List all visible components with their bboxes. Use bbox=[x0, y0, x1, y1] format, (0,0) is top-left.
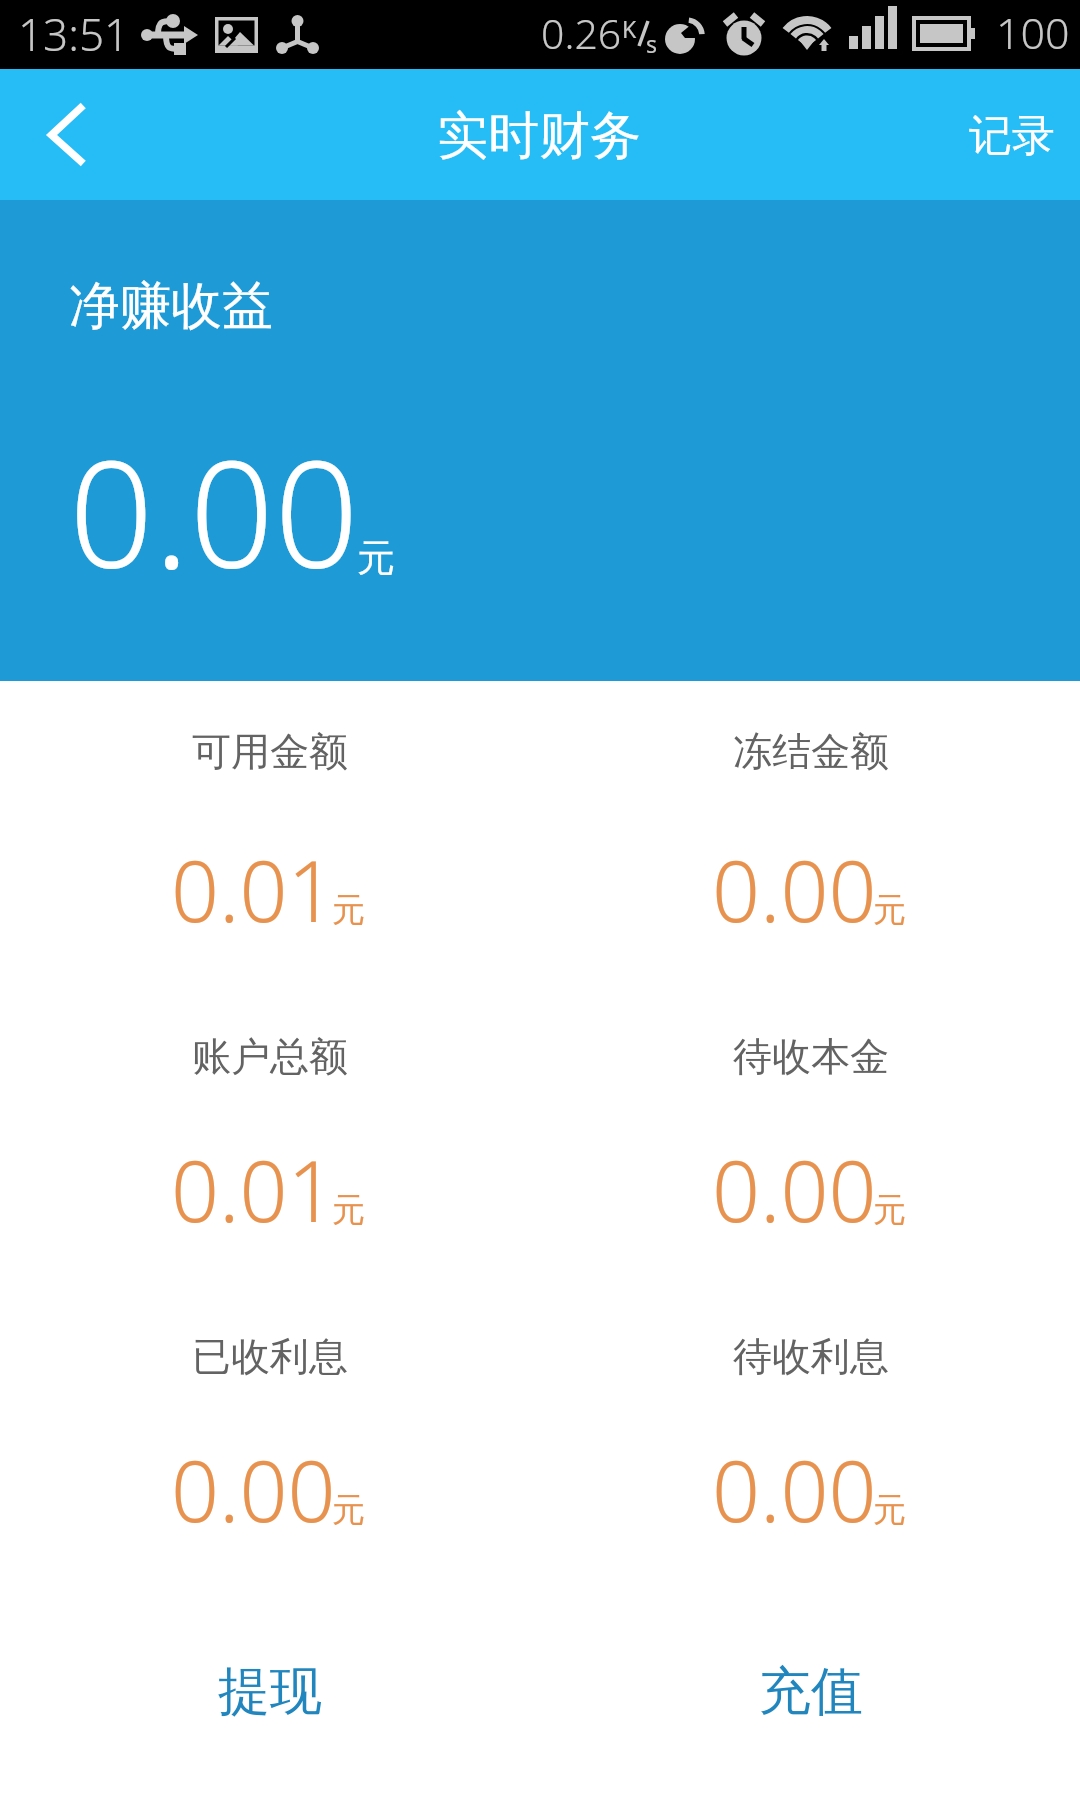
staticText: 记录 bbox=[969, 109, 1055, 160]
staticText: 冻结金额 bbox=[621, 727, 1001, 776]
staticText: 0.26 bbox=[541, 5, 622, 61]
staticText: 元 bbox=[332, 1489, 365, 1531]
staticText: 元 bbox=[332, 1189, 365, 1231]
staticText: 待收本金 bbox=[621, 1032, 1001, 1081]
staticText: 0.00 bbox=[69, 410, 359, 612]
staticText: 元 bbox=[873, 1189, 906, 1231]
button[interactable]: 记录 bbox=[929, 69, 1080, 200]
staticText: 待收利息 bbox=[621, 1332, 1001, 1381]
button[interactable]: 充值 bbox=[701, 1635, 921, 1755]
staticText: 0.00 bbox=[171, 1432, 336, 1546]
staticText: 13:51 bbox=[18, 4, 130, 64]
staticText: 充值 bbox=[759, 1659, 863, 1725]
staticText: 0.01 bbox=[171, 832, 336, 946]
staticText: 账户总额 bbox=[80, 1032, 460, 1081]
staticText: 元 bbox=[332, 889, 365, 931]
staticText: s bbox=[646, 28, 658, 59]
staticText: 提现 bbox=[218, 1659, 322, 1725]
staticText: 净赚收益 bbox=[69, 274, 273, 338]
staticText: 已收利息 bbox=[80, 1332, 460, 1381]
staticText: 元 bbox=[873, 889, 906, 931]
staticText: 0.00 bbox=[712, 832, 877, 946]
staticText: 0.01 bbox=[171, 1132, 336, 1246]
staticText: 元 bbox=[873, 1489, 906, 1531]
staticText: 0.00 bbox=[712, 1132, 877, 1246]
staticText: 元 bbox=[357, 534, 395, 582]
staticText: 0.00 bbox=[712, 1432, 877, 1546]
staticText: 可用金额 bbox=[80, 727, 460, 776]
button[interactable]: Back bbox=[0, 69, 120, 200]
staticText: K bbox=[622, 13, 637, 44]
staticText: 100 bbox=[996, 3, 1070, 62]
staticText: 实时财务 bbox=[437, 104, 641, 168]
button[interactable]: 提现 bbox=[160, 1635, 380, 1755]
